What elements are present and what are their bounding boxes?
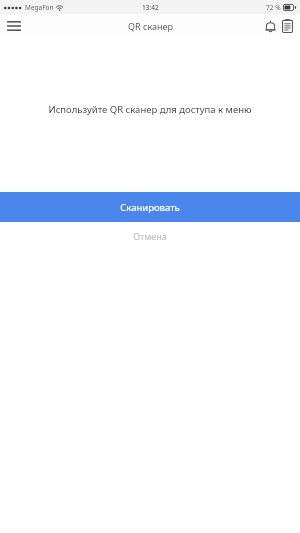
button[interactable]: Отмена <box>0 222 300 250</box>
staticText: 72 % <box>266 3 281 12</box>
button[interactable]: History <box>279 16 296 36</box>
staticText: MegaFon <box>25 3 54 12</box>
button[interactable]: Menu <box>0 14 28 37</box>
staticText: 13:42 <box>142 3 159 12</box>
button[interactable]: Notifications <box>262 16 279 36</box>
staticText: Используйте QR сканер для доступа к меню <box>10 103 290 116</box>
staticText: QR сканер <box>128 20 173 32</box>
staticText: Отмена <box>133 230 167 242</box>
staticText: Сканировать <box>120 201 180 214</box>
button[interactable]: Сканировать <box>0 192 300 222</box>
